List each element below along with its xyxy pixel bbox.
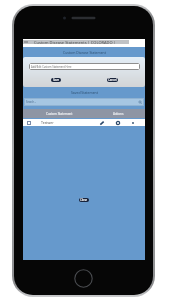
staticText: Close xyxy=(80,198,88,202)
staticText: Search... xyxy=(26,100,37,104)
button[interactable]: Settings xyxy=(115,120,121,126)
button[interactable]: Save xyxy=(51,78,61,82)
staticText: Save xyxy=(53,78,60,82)
staticText: Testwer xyxy=(41,120,54,125)
button[interactable]: Add/Edit Custom Statement Here xyxy=(29,63,140,70)
button[interactable]: More options xyxy=(130,120,136,126)
staticText: Actions xyxy=(113,112,124,116)
staticText: Custom Disease Statements | COLORADO | xyxy=(34,40,116,44)
staticText: Cancel xyxy=(108,78,117,82)
button[interactable]: Testwer xyxy=(23,119,145,126)
staticText: Saved Statement xyxy=(71,90,98,95)
button[interactable]: Cancel xyxy=(107,78,118,82)
staticText: Custom Disease Statement xyxy=(63,50,106,55)
button[interactable]: Close xyxy=(79,198,89,202)
staticText: Add/Edit Custom Statement Here xyxy=(31,65,72,69)
button[interactable]: Search... xyxy=(24,98,144,106)
button[interactable]: Edit xyxy=(99,120,105,126)
staticText: Custom Statement xyxy=(46,112,73,116)
